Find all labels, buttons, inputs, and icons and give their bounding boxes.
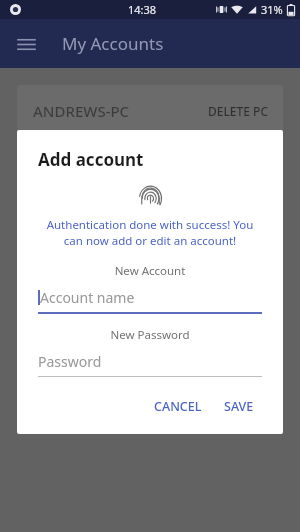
button[interactable]: DELETE PC <box>208 103 269 119</box>
staticText: Authentication done with success! You ca… <box>38 217 262 248</box>
staticText: Add account <box>38 148 144 171</box>
button[interactable]: CANCEL <box>146 391 210 422</box>
button[interactable]: SAVE <box>216 391 262 422</box>
staticText: 31% <box>261 2 283 17</box>
button[interactable]: Password <box>38 352 262 377</box>
staticText: My Accounts <box>62 32 164 55</box>
button[interactable]: ANDREWS-PC <box>17 85 283 205</box>
staticText: ANDREWS-PC <box>33 101 130 121</box>
staticText: New Account <box>38 263 262 279</box>
staticText: Password <box>38 352 102 371</box>
button[interactable]: Open navigation menu <box>8 26 44 62</box>
staticText: Account name <box>40 288 135 307</box>
staticText: New Password <box>38 327 262 343</box>
staticText: SAVE <box>224 398 254 415</box>
staticText: CANCEL <box>154 398 202 415</box>
staticText: 14:38 <box>128 2 157 17</box>
button[interactable]: Account name <box>38 288 262 314</box>
